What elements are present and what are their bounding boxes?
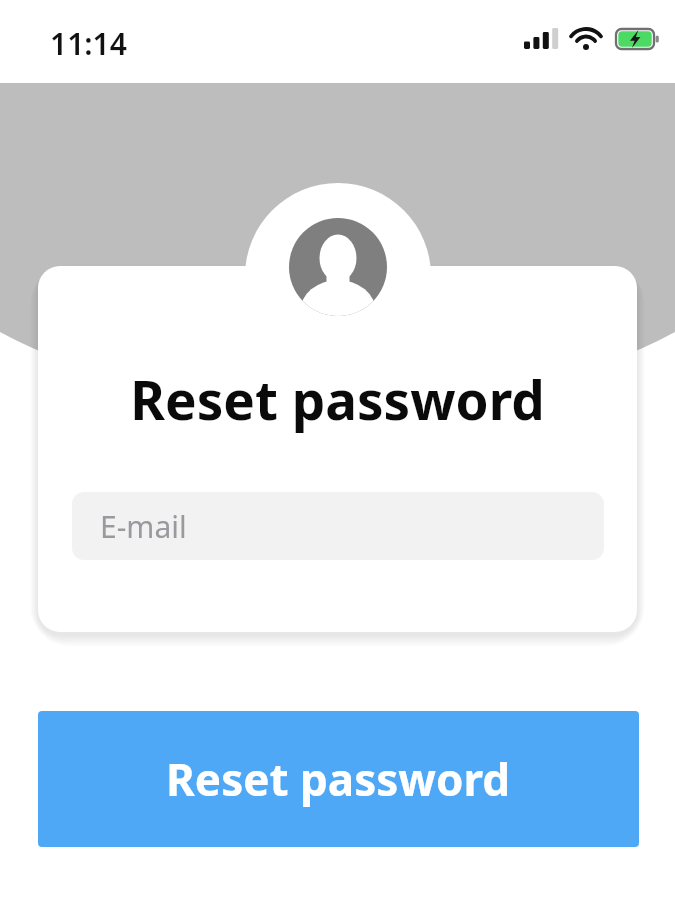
staticText: 11:14 [50, 23, 127, 64]
staticText: Reset password [38, 363, 637, 435]
staticText: E-mail [100, 506, 187, 547]
other: Signal, Wi-Fi and battery status [520, 24, 660, 58]
staticText: Reset password [166, 749, 511, 809]
button[interactable]: E-mail [72, 492, 604, 560]
button[interactable]: Reset password [38, 711, 639, 847]
